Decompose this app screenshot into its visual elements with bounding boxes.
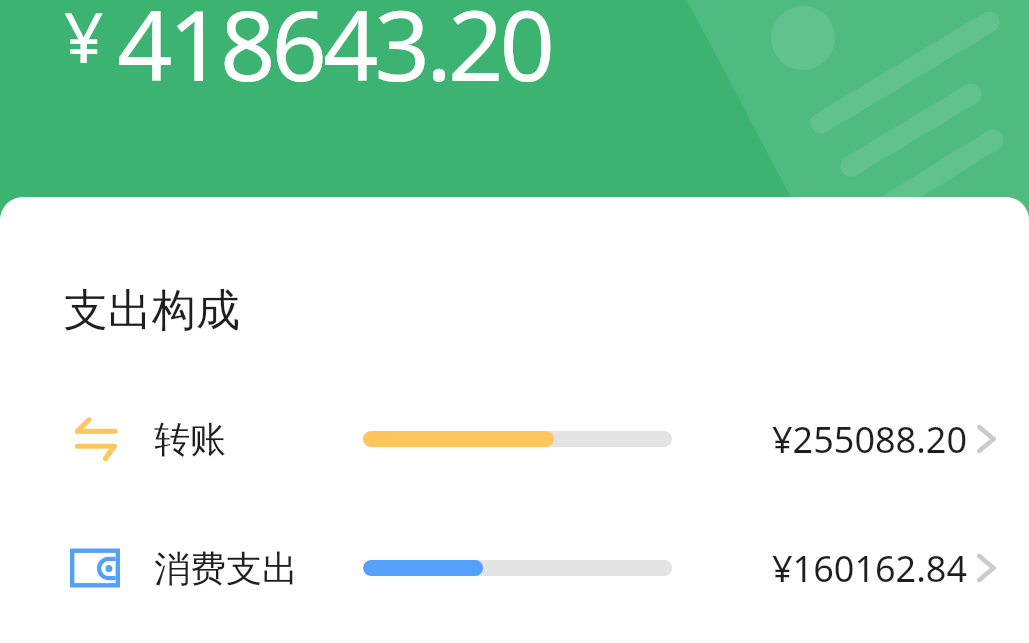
button[interactable]: Open 消费支出 details [969,551,1003,585]
staticText: 消费支出 [154,546,298,591]
button[interactable]: Open 转账 details [969,422,1003,456]
button[interactable]: ¥ [0,0,1029,110]
button[interactable]: 转账 [0,404,1029,474]
staticText: ¥255088.20 [672,415,967,464]
staticText: 转账 [154,417,226,462]
staticText: ¥ [64,0,104,83]
staticText: 418643.20 [117,0,551,87]
button[interactable]: 消费支出 [0,533,1029,603]
staticText: ¥160162.84 [672,544,967,593]
staticText: 支出构成 [64,283,240,338]
